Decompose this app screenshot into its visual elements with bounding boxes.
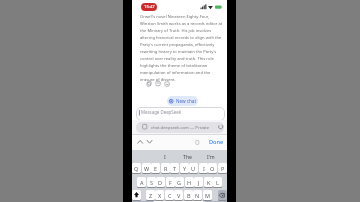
- button[interactable]: J: [194, 177, 203, 187]
- staticText: V: [177, 192, 181, 199]
- button[interactable]: Q: [132, 163, 141, 173]
- staticText: N: [195, 192, 200, 199]
- button[interactable]: [218, 190, 227, 200]
- staticText: U: [191, 165, 196, 172]
- button[interactable]: S: [147, 177, 156, 187]
- button[interactable]: Y: [180, 163, 189, 173]
- staticText: L: [216, 179, 219, 186]
- button[interactable]: 15:47: [141, 3, 157, 11]
- staticText: R: [164, 165, 168, 172]
- button[interactable]: Message DeepSeek: [136, 107, 225, 121]
- button[interactable]: W: [142, 163, 151, 173]
- staticText: W: [144, 165, 150, 172]
- button[interactable]: L: [213, 177, 222, 187]
- button[interactable]: A: [137, 177, 146, 187]
- button[interactable]: R: [161, 163, 170, 173]
- button[interactable]: F: [166, 177, 175, 187]
- button[interactable]: T: [170, 163, 179, 173]
- staticText: Q: [134, 165, 139, 172]
- button[interactable]: B: [184, 190, 193, 200]
- staticText: X: [158, 192, 162, 199]
- button[interactable]: O: [208, 163, 217, 173]
- staticText: Orwell's novel Nineteen Eighty-Four, Win…: [140, 14, 223, 82]
- button[interactable]: I: [199, 163, 208, 173]
- staticText: chat.deepseek.com — Private: [151, 125, 210, 131]
- staticText: T: [173, 165, 177, 172]
- staticText: The: [183, 153, 193, 160]
- staticText: D: [158, 179, 163, 186]
- staticText: New chat: [176, 98, 197, 104]
- button[interactable]: Z: [146, 190, 155, 200]
- button[interactable]: E: [151, 163, 160, 173]
- staticText: B: [187, 192, 191, 199]
- button[interactable]: C: [165, 190, 174, 200]
- button[interactable]: Done: [206, 137, 226, 147]
- button[interactable]: [137, 139, 155, 145]
- button[interactable]: G: [175, 177, 184, 187]
- button[interactable]: New chat: [167, 96, 198, 106]
- staticText: I: [203, 165, 205, 172]
- staticText: O: [210, 165, 215, 172]
- staticText: G: [177, 179, 182, 186]
- button[interactable]: M: [203, 190, 212, 200]
- staticText: H: [187, 179, 192, 186]
- button[interactable]: [132, 190, 141, 200]
- staticText: I'm: [207, 153, 215, 160]
- button[interactable]: V: [174, 190, 183, 200]
- button[interactable]: X: [155, 190, 164, 200]
- button[interactable]: K: [204, 177, 213, 187]
- staticText: S: [150, 179, 154, 186]
- staticText: C: [168, 192, 172, 199]
- staticText: P: [221, 165, 225, 172]
- staticText: K: [207, 179, 211, 186]
- staticText: M: [205, 192, 210, 199]
- staticText: I: [164, 153, 166, 160]
- staticText: Done: [209, 138, 224, 146]
- staticText: Y: [183, 165, 187, 172]
- staticText: 15:47: [144, 4, 155, 10]
- button[interactable]: P: [218, 163, 227, 173]
- staticText: Z: [149, 192, 153, 199]
- staticText: E: [154, 165, 158, 172]
- button[interactable]: chat.deepseek.com — Private: [136, 122, 224, 133]
- staticText: A: [140, 179, 144, 186]
- staticText: Message DeepSeek: [141, 109, 182, 115]
- button[interactable]: H: [185, 177, 194, 187]
- staticText: J: [198, 179, 200, 186]
- staticText: F: [169, 179, 172, 186]
- button[interactable]: D: [156, 177, 165, 187]
- button[interactable]: U: [189, 163, 198, 173]
- button[interactable]: N: [193, 190, 202, 200]
